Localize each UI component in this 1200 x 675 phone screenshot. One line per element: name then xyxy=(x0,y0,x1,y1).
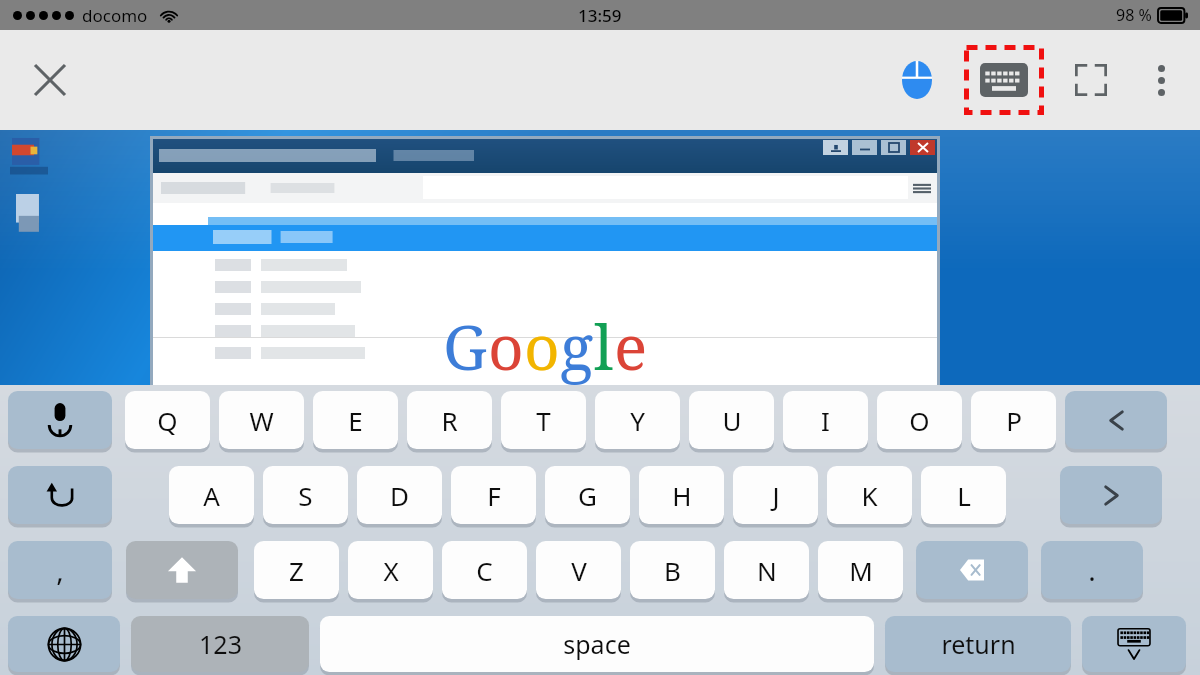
staticText: Z xyxy=(289,553,304,588)
button[interactable]: H xyxy=(639,466,724,524)
staticText: D xyxy=(390,478,409,513)
button[interactable]: S xyxy=(263,466,348,524)
button[interactable]: F xyxy=(451,466,536,524)
staticText: space xyxy=(563,627,631,661)
staticText: F xyxy=(487,478,501,513)
button[interactable]: V xyxy=(536,541,621,599)
staticText: L xyxy=(957,478,971,513)
button[interactable]: Fullscreen xyxy=(1060,49,1122,111)
button[interactable]: M xyxy=(818,541,903,599)
staticText: . xyxy=(1088,551,1096,589)
button[interactable]: I xyxy=(783,391,868,449)
button[interactable]: R xyxy=(407,391,492,449)
staticText: C xyxy=(476,553,493,588)
staticText: I xyxy=(821,403,830,438)
staticText: S xyxy=(298,478,313,513)
button[interactable]: Move left xyxy=(1065,391,1167,449)
button[interactable]: G xyxy=(545,466,630,524)
button[interactable]: space xyxy=(320,616,874,672)
button[interactable]: Window control xyxy=(910,140,935,155)
staticText: Q xyxy=(157,403,178,438)
button[interactable]: return xyxy=(885,616,1071,672)
staticText: 123 xyxy=(199,627,242,661)
button[interactable]: P xyxy=(971,391,1056,449)
staticText: 13:59 xyxy=(578,4,622,27)
button[interactable]: Backspace xyxy=(916,541,1028,599)
button[interactable]: Z xyxy=(254,541,339,599)
button[interactable]: Q xyxy=(125,391,210,449)
staticText: G xyxy=(578,478,597,513)
staticText: G xyxy=(443,304,488,388)
staticText: J xyxy=(772,478,780,513)
staticText: return xyxy=(941,627,1016,661)
button[interactable]: Y xyxy=(595,391,680,449)
staticText: V xyxy=(571,553,587,588)
staticText: e xyxy=(614,304,648,388)
staticText: l xyxy=(594,304,614,388)
button[interactable]: K xyxy=(827,466,912,524)
button[interactable]: E xyxy=(313,391,398,449)
button[interactable]: , xyxy=(8,541,112,599)
button[interactable]: Move right xyxy=(1060,466,1162,524)
button[interactable]: N xyxy=(724,541,809,599)
button[interactable]: 123 xyxy=(131,616,309,672)
staticText: H xyxy=(672,478,692,513)
button[interactable]: More options xyxy=(1130,49,1192,111)
button[interactable]: Mouse pointer xyxy=(886,49,948,111)
button[interactable]: Hide keyboard xyxy=(1082,616,1186,672)
button[interactable]: . xyxy=(1041,541,1143,599)
button[interactable]: T xyxy=(501,391,586,449)
button[interactable]: Close xyxy=(20,50,80,110)
staticText: T xyxy=(536,403,551,438)
staticText: g xyxy=(560,304,594,388)
button[interactable]: Window control xyxy=(881,140,906,155)
staticText: N xyxy=(757,553,777,588)
button[interactable]: U xyxy=(689,391,774,449)
staticText: 98 % xyxy=(1116,4,1152,26)
button[interactable]: Dictate xyxy=(8,391,112,449)
staticText: o xyxy=(524,304,560,388)
staticText: M xyxy=(849,553,873,588)
staticText: o xyxy=(488,304,524,388)
staticText: K xyxy=(861,478,878,513)
button[interactable]: Keyboard xyxy=(964,45,1044,115)
button[interactable]: C xyxy=(442,541,527,599)
button[interactable]: J xyxy=(733,466,818,524)
button[interactable]: Window control xyxy=(823,140,848,155)
staticText: docomo xyxy=(82,4,148,27)
staticText: X xyxy=(383,553,399,588)
button[interactable]: Shift xyxy=(126,541,238,599)
staticText: B xyxy=(664,553,681,588)
staticText: P xyxy=(1006,403,1022,438)
staticText: R xyxy=(441,403,458,438)
staticText: Y xyxy=(630,403,645,438)
staticText: E xyxy=(348,403,363,438)
staticText: , xyxy=(56,551,64,589)
button[interactable]: L xyxy=(921,466,1006,524)
staticText: O xyxy=(909,403,930,438)
button[interactable]: O xyxy=(877,391,962,449)
staticText: A xyxy=(203,478,220,513)
staticText: W xyxy=(249,403,274,438)
button[interactable]: B xyxy=(630,541,715,599)
staticText: U xyxy=(722,403,742,438)
button[interactable]: W xyxy=(219,391,304,449)
button[interactable]: Undo xyxy=(8,466,112,524)
button[interactable]: D xyxy=(357,466,442,524)
button[interactable]: X xyxy=(348,541,433,599)
button[interactable]: Next keyboard xyxy=(8,616,120,672)
button[interactable]: Window control xyxy=(852,140,877,155)
button[interactable]: A xyxy=(169,466,254,524)
